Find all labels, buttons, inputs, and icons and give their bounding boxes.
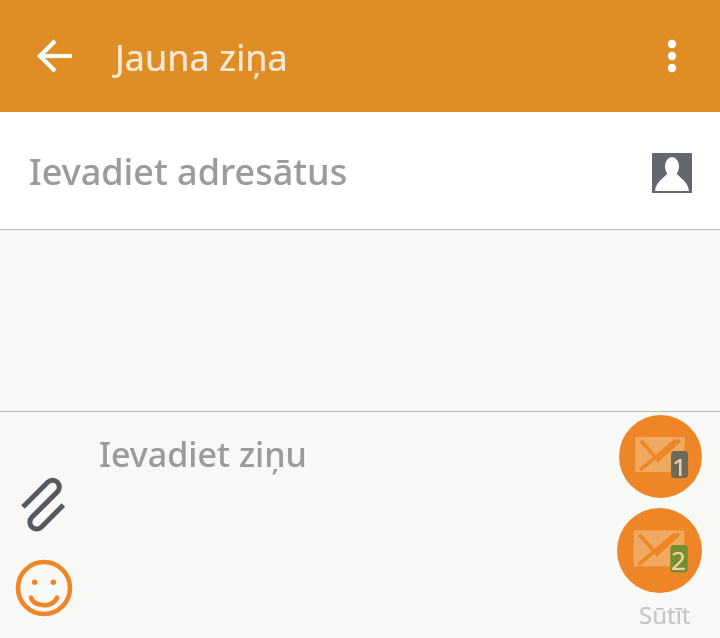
- button[interactable]: Insert emoji: [12, 556, 76, 620]
- button[interactable]: Ievadiet ziņu: [88, 412, 608, 504]
- button[interactable]: Send message 1: [619, 415, 702, 498]
- button[interactable]: Ievadiet adresātus: [0, 112, 720, 229]
- button[interactable]: Back: [20, 20, 92, 92]
- staticText: 2: [671, 542, 686, 570]
- staticText: 1: [672, 449, 687, 476]
- staticText: Ievadiet ziņu: [99, 431, 307, 477]
- staticText: Jauna ziņa: [115, 33, 288, 82]
- staticText: Sūtīt: [639, 598, 691, 631]
- button[interactable]: Attach file: [15, 475, 79, 539]
- button[interactable]: Choose contact: [652, 153, 692, 193]
- button[interactable]: Send message 2: [617, 508, 702, 593]
- staticText: Ievadiet adresātus: [29, 147, 348, 196]
- button[interactable]: More options: [644, 28, 700, 84]
